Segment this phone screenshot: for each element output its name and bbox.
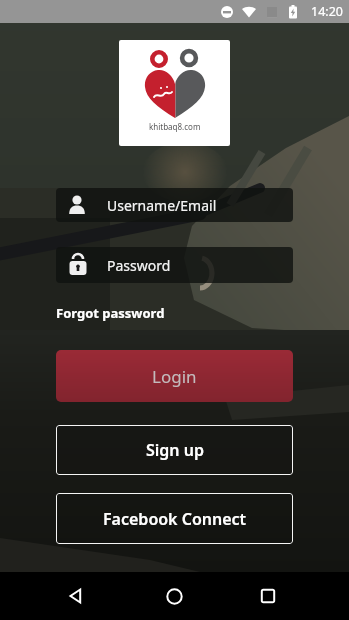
button[interactable] [158, 580, 190, 612]
button[interactable] [252, 580, 284, 612]
button[interactable]: Facebook Connect [56, 493, 293, 544]
staticText: Password [107, 256, 171, 275]
staticText: Sign up [146, 439, 204, 461]
button[interactable] [60, 580, 92, 612]
staticText: 14:20 [311, 3, 343, 20]
staticText: Username/Email [107, 196, 217, 215]
staticText: Login [152, 365, 197, 388]
button[interactable]: Forgot password [56, 304, 165, 322]
button[interactable]: Username/Email [56, 188, 293, 222]
button[interactable]: Login [56, 350, 293, 402]
staticText: Facebook Connect [103, 508, 247, 530]
button[interactable]: Password [56, 247, 293, 283]
staticText: khitbaq8.com [149, 121, 201, 132]
button[interactable]: Sign up [56, 425, 293, 475]
